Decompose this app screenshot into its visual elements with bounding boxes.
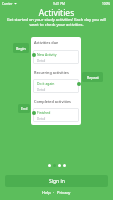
staticText: Activities due (34, 40, 59, 45)
staticText: Completed activities (34, 99, 71, 104)
staticText: Recurring activities (34, 70, 69, 75)
staticText: Carrier (2, 2, 13, 6)
button[interactable]: Do it again (33, 79, 79, 93)
staticText: New Activity (37, 52, 57, 57)
staticText: Detail (37, 88, 46, 92)
staticText: Sign in (49, 178, 65, 185)
staticText: Repeat (87, 75, 99, 80)
staticText: Begin (16, 46, 26, 51)
button[interactable]: Help (40, 190, 53, 195)
button[interactable]: New Activity (33, 50, 79, 64)
button[interactable]: Repeat (82, 72, 103, 82)
button[interactable]: Finished (33, 108, 79, 122)
staticText: Detail (37, 117, 46, 121)
staticText: Help (42, 190, 51, 195)
button[interactable]: Sign in (5, 175, 108, 187)
staticText: Do it again (37, 81, 55, 86)
button[interactable]: Begin (13, 43, 29, 53)
button[interactable]: Privacy (55, 190, 73, 195)
staticText: End (21, 106, 28, 111)
staticText: · (53, 190, 55, 195)
staticText: Finished (37, 110, 51, 115)
button[interactable]: End (18, 104, 30, 113)
staticText: 9:41 PM (53, 2, 65, 6)
staticText: Privacy (57, 190, 71, 195)
staticText: Get started on your study activities! Ea… (3, 17, 110, 27)
staticText: Activities (0, 7, 113, 19)
staticText: Detail (37, 59, 46, 63)
staticText: 100% (102, 2, 111, 6)
